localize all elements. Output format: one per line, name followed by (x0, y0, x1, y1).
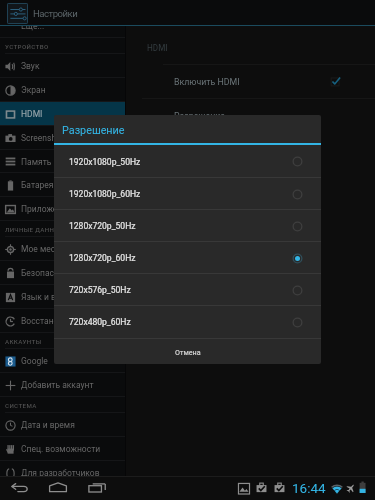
button[interactable]: Язык и ввод (0, 285, 125, 309)
staticText: 16:44 (292, 480, 326, 496)
staticText: 1920x1080p_60Hz (69, 189, 141, 199)
button[interactable]: 1920x1080p_50Hz (54, 145, 321, 178)
staticText: Спец. возможности (21, 444, 101, 454)
staticText: Добавить аккаунт (21, 380, 94, 390)
button[interactable]: Google (0, 349, 125, 373)
staticText: 1280x720p_60Hz (69, 253, 136, 263)
button[interactable]: Безопасность (0, 261, 125, 285)
button[interactable]: Recent apps (87, 480, 106, 495)
staticText: УСТРОЙСТВО (5, 43, 49, 50)
staticText: Батарея (21, 180, 54, 190)
staticText: 1920x1080p_50Hz (69, 157, 141, 167)
staticText: АККАУНТЫ (5, 338, 42, 345)
button[interactable]: 720x480p_60Hz (54, 306, 321, 338)
staticText: HDMI (21, 109, 43, 119)
button[interactable]: 720x576p_50Hz (54, 274, 321, 306)
staticText: Google (21, 356, 48, 366)
button[interactable]: Screenshot (0, 126, 125, 150)
button[interactable]: Для разработчиков (0, 461, 125, 476)
staticText: СИСТЕМА (5, 402, 37, 409)
staticText: Восстановление и сброс (21, 316, 120, 326)
staticText: Мое местоположение (21, 244, 109, 254)
staticText: Язык и ввод (21, 292, 71, 302)
staticText: Screenshot (21, 133, 64, 143)
staticText: Приложения (21, 204, 72, 214)
staticText: 1280x720p_50Hz (69, 221, 136, 231)
staticText: Разрешение (62, 124, 125, 137)
staticText: 720x480p_60Hz (69, 317, 131, 327)
staticText: Включить HDMI (174, 77, 240, 87)
staticText: Для разработчиков (21, 468, 100, 476)
staticText: ЛИЧНЫЕ ДАННЫЕ (5, 226, 64, 233)
staticText: Безопасность (21, 268, 77, 278)
button[interactable]: Восстановление и сброс (0, 309, 125, 333)
staticText: 720x576p_50Hz (69, 285, 131, 295)
button[interactable]: Спец. возможности (0, 437, 125, 461)
button[interactable]: Экран (0, 78, 125, 102)
staticText: HDMI (147, 43, 168, 53)
button[interactable]: Приложения (0, 197, 125, 221)
button[interactable]: Ещё... (0, 26, 125, 38)
button[interactable]: HDMI (0, 102, 125, 126)
button[interactable]: Отмена (54, 339, 321, 364)
button[interactable]: Память (0, 150, 125, 173)
button[interactable]: 1920x1080p_60Hz (54, 178, 321, 210)
staticText: Разрешение (174, 111, 225, 121)
button[interactable]: Включить HDMI (126, 65, 375, 99)
staticText: Дата и время (21, 420, 75, 430)
button[interactable]: 1280x720p_60Hz (54, 242, 321, 274)
button[interactable]: Home (48, 480, 68, 495)
staticText: Отмена (175, 348, 201, 356)
button[interactable]: Settings (7, 3, 28, 24)
button[interactable]: Back (11, 480, 29, 495)
button[interactable]: Звук (0, 54, 125, 78)
button[interactable]: Мое местоположение (0, 237, 125, 261)
staticText: Звук (21, 61, 40, 71)
button[interactable]: Дата и время (0, 413, 125, 437)
staticText: Экран (21, 85, 46, 95)
staticText: Настройки (33, 8, 78, 19)
button[interactable]: Батарея (0, 173, 125, 197)
button[interactable]: Добавить аккаунт (0, 373, 125, 397)
button[interactable]: 1280x720p_50Hz (54, 210, 321, 242)
staticText: Ещё... (21, 26, 45, 31)
button[interactable]: Разрешение (126, 99, 375, 133)
staticText: Память (21, 157, 52, 167)
